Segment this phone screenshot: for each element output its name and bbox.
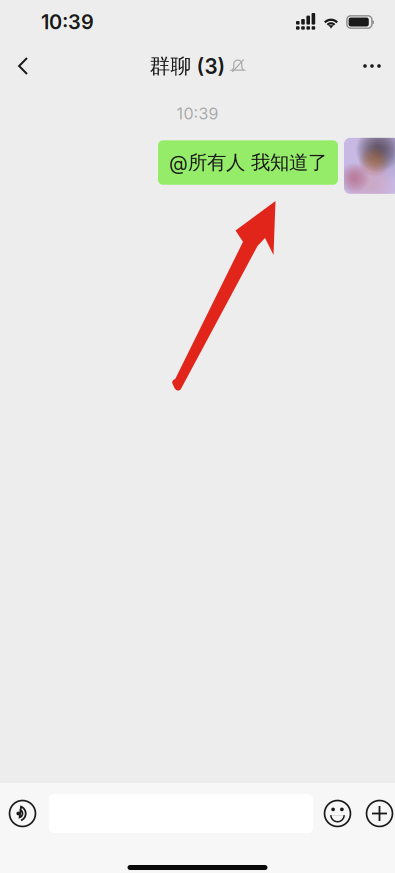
button[interactable]: More options xyxy=(365,799,394,828)
staticText: 10:39 xyxy=(41,10,94,34)
button[interactable]: Back xyxy=(0,44,46,88)
button[interactable]: Emoji xyxy=(323,799,352,828)
button[interactable]: More xyxy=(349,44,395,88)
staticText: 10:39 xyxy=(176,104,218,123)
staticText: @所有人 我知道了 xyxy=(169,150,327,175)
button[interactable]: Voice message xyxy=(8,799,37,828)
staticText: 群聊 (3) xyxy=(149,53,225,79)
